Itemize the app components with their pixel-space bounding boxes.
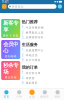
staticText: 出行与票务: [26, 59, 41, 62]
staticText: 本地生活: [26, 54, 38, 57]
staticText: 生活服务: [22, 42, 38, 47]
button[interactable]: 会员中心: [1, 40, 20, 59]
staticText: 会员中心: [3, 41, 18, 54]
staticText: 待收货: [26, 76, 35, 80]
staticText: 我的订单: [22, 65, 38, 70]
staticText: 整点开抢: [5, 76, 17, 79]
staticText: 1.: [22, 49, 25, 52]
staticText: 1.: [22, 71, 25, 75]
staticText: 3.: [22, 58, 25, 62]
staticText: 退款售后: [26, 81, 38, 85]
button[interactable]: 购物车: [38, 90, 51, 98]
staticText: 今日特惠好物: [26, 26, 44, 29]
staticText: 发现: [29, 95, 35, 99]
staticText: 限时 5 折起: [3, 34, 19, 37]
staticText: 首页: [3, 95, 9, 98]
button[interactable]: 新客专享: [1, 19, 20, 38]
staticText: 充值缴费中心: [26, 49, 44, 52]
staticText: 2.: [22, 53, 25, 57]
button[interactable]: 秒杀专场: [1, 61, 20, 80]
staticText: 我的: [55, 95, 61, 98]
button[interactable]: 分类: [13, 90, 26, 98]
staticText: 1.: [22, 26, 25, 29]
staticText: 2.: [22, 76, 25, 80]
staticText: 新客专享: [3, 20, 18, 33]
staticText: 3.: [22, 81, 25, 85]
staticText: 9:41: [2, 0, 9, 3]
button[interactable]: 发现: [26, 90, 38, 99]
staticText: 春季新品上架: [26, 31, 44, 34]
staticText: 3.: [22, 36, 25, 39]
staticText: 签到领券: [5, 55, 17, 58]
staticText: 品牌直营专区: [26, 36, 44, 39]
staticText: 购物车: [40, 95, 49, 98]
staticText: 秒杀专场: [3, 62, 18, 75]
staticText: 分类: [16, 95, 22, 98]
staticText: 待付款订单: [26, 71, 41, 75]
staticText: 热门推荐: [22, 19, 38, 24]
staticText: 搜索商品: [12, 5, 24, 8]
staticText: 2.: [22, 31, 25, 34]
button[interactable]: 我的: [51, 90, 64, 98]
button[interactable]: 首页: [0, 90, 13, 98]
